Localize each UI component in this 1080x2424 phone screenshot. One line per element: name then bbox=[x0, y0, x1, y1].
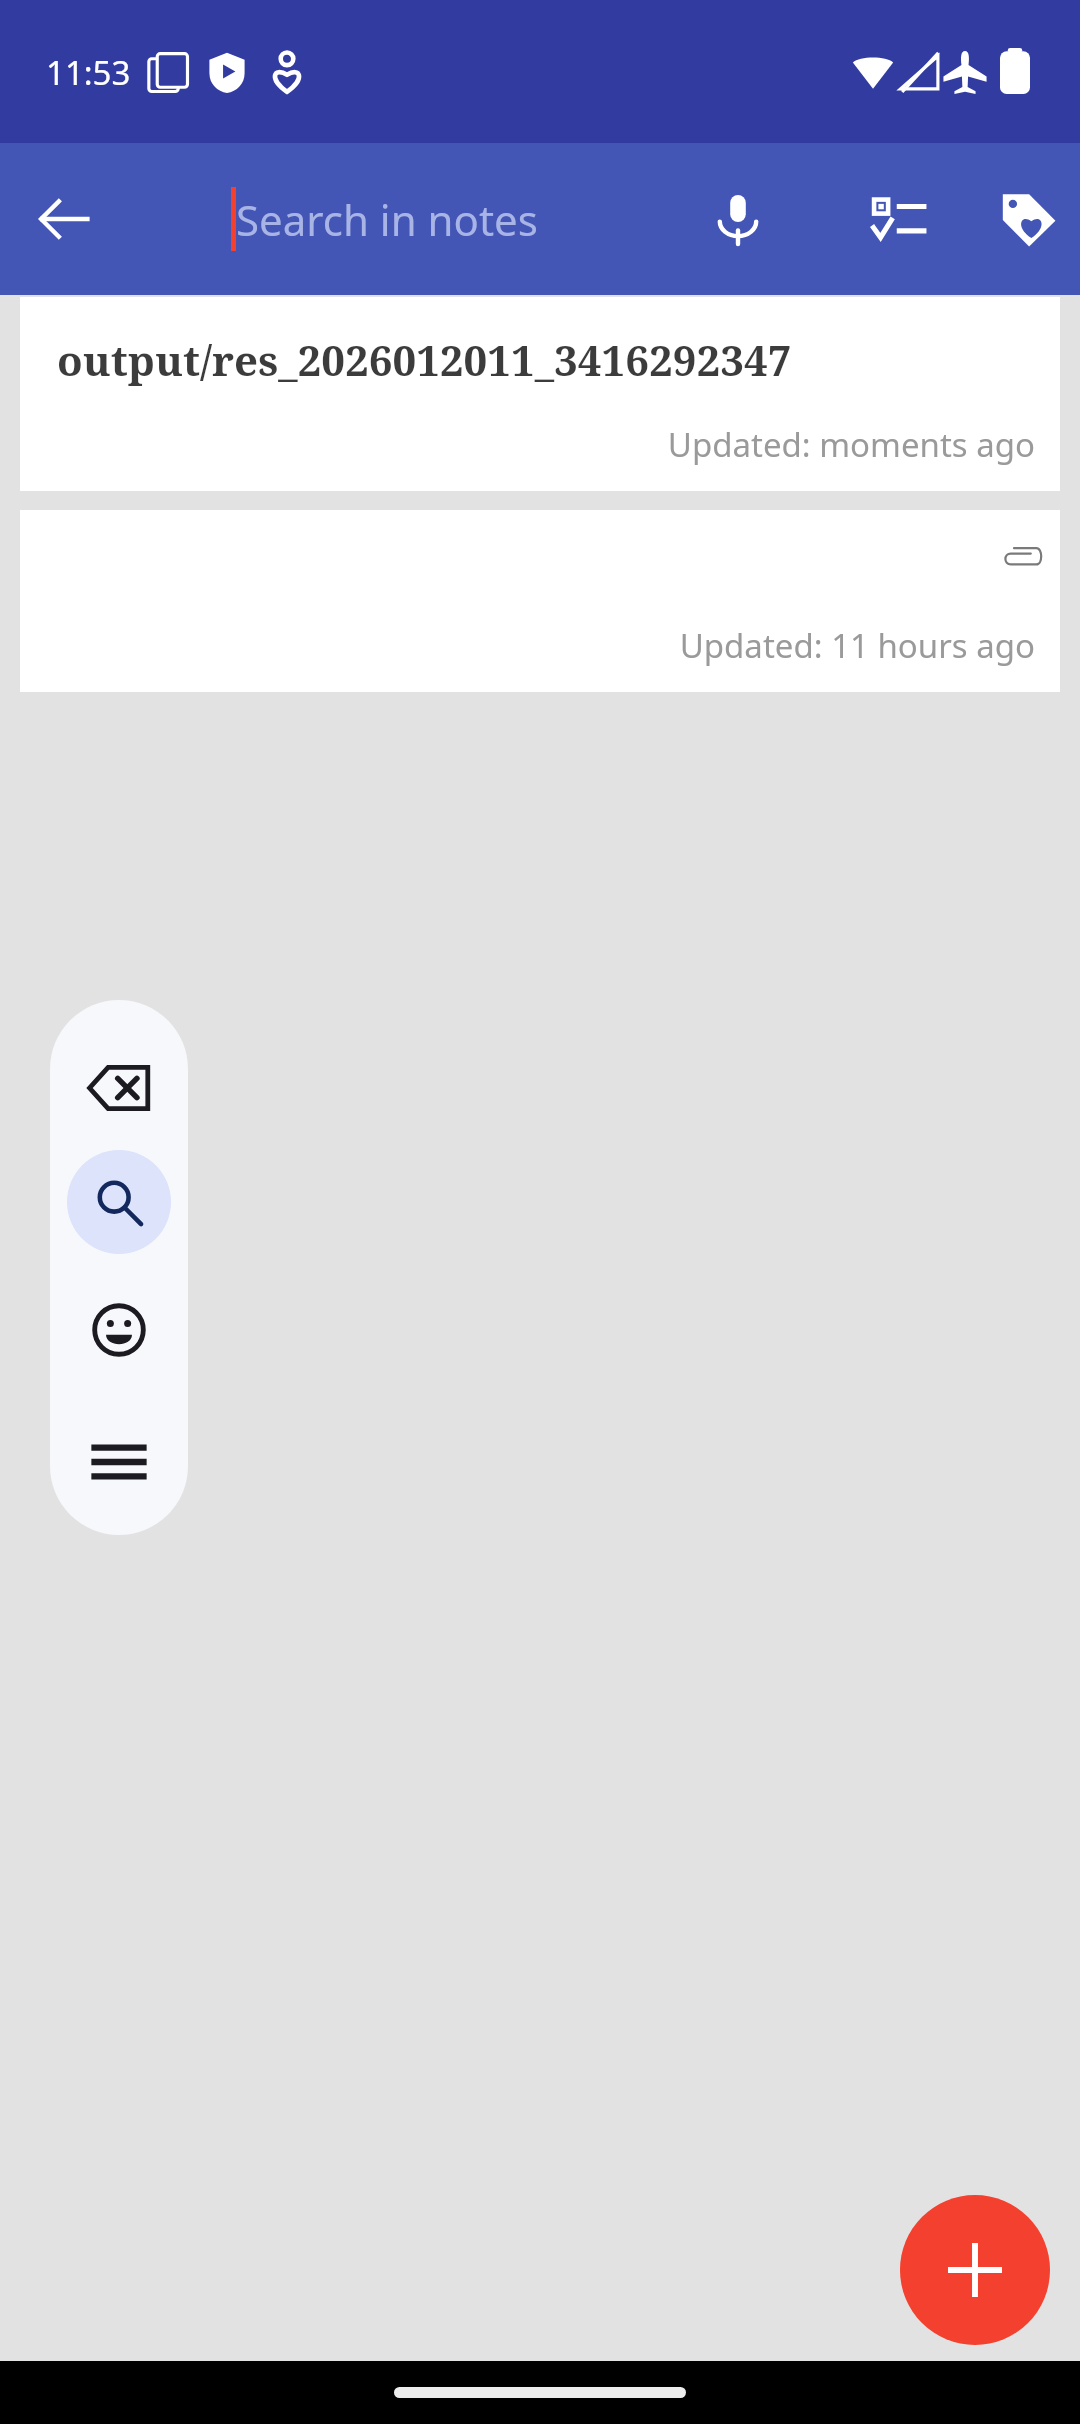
staticText: Updated: 11 hours ago bbox=[679, 623, 1035, 668]
staticText: Updated: moments ago bbox=[667, 422, 1035, 467]
staticText: 11:53 bbox=[46, 50, 131, 95]
button[interactable]: Search in notes bbox=[236, 143, 706, 295]
button[interactable]: Back bbox=[14, 169, 114, 269]
button[interactable]: Search bbox=[50, 1150, 188, 1254]
button[interactable]: Updated: 11 hours ago bbox=[20, 510, 1060, 692]
button[interactable]: Labels bbox=[978, 169, 1078, 269]
button[interactable]: Create new note bbox=[900, 2195, 1050, 2345]
button[interactable]: Checklist bbox=[850, 169, 950, 269]
staticText: output/res_2026012011_3416292347 bbox=[57, 331, 1080, 388]
button[interactable]: Backspace bbox=[50, 1036, 188, 1140]
button[interactable]: Menu bbox=[50, 1410, 188, 1514]
button[interactable]: Emoji bbox=[50, 1278, 188, 1382]
staticText: Search in notes bbox=[236, 191, 538, 248]
button[interactable]: output/res_2026012011_3416292347 bbox=[20, 297, 1060, 491]
button[interactable]: Voice search bbox=[688, 169, 788, 269]
